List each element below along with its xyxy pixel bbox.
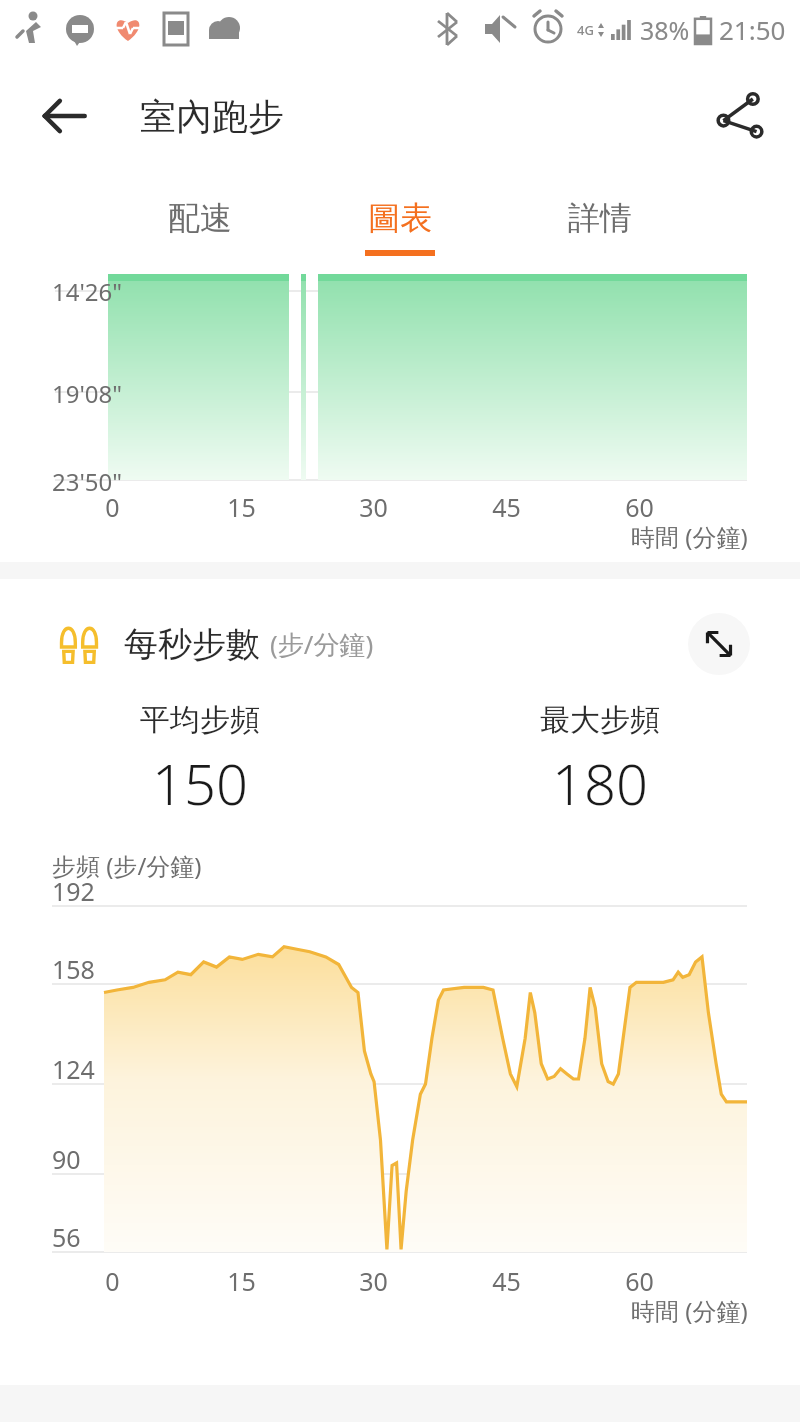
staticText: 步頻 (步/分鐘) <box>52 849 202 882</box>
button[interactable]: 圖表 <box>300 174 500 274</box>
staticText: 時間 (分鐘) <box>631 520 748 553</box>
button[interactable]: 配速 <box>100 174 300 274</box>
staticText: 每秒步數 <box>124 623 260 666</box>
staticText: 90 <box>52 1142 81 1176</box>
staticText: 158 <box>52 952 95 986</box>
staticText: (步/分鐘) <box>270 626 374 662</box>
button[interactable]: Expand chart <box>688 613 750 675</box>
staticText: 38% <box>640 13 690 47</box>
staticText: 23'50" <box>52 465 123 498</box>
staticText: 21:50 <box>719 12 786 47</box>
staticText: 4G <box>577 21 594 39</box>
staticText: 15 <box>227 490 256 524</box>
staticText: 45 <box>492 1264 521 1298</box>
button[interactable]: Share <box>710 86 770 146</box>
staticText: 0 <box>105 490 120 524</box>
staticText: 180 <box>552 745 648 821</box>
staticText: 15 <box>227 1264 256 1298</box>
staticText: 室內跑步 <box>140 94 284 139</box>
staticText: 時間 (分鐘) <box>631 1294 748 1327</box>
staticText: 60 <box>625 490 654 524</box>
staticText: 詳情 <box>568 198 632 238</box>
staticText: 30 <box>359 490 388 524</box>
staticText: 56 <box>52 1220 81 1254</box>
staticText: 平均步頻 <box>140 701 260 739</box>
staticText: 最大步頻 <box>540 701 660 739</box>
staticText: 配速 <box>168 198 232 238</box>
staticText: 192 <box>52 874 95 908</box>
staticText: 60 <box>625 1264 654 1298</box>
staticText: 30 <box>359 1264 388 1298</box>
button[interactable]: 詳情 <box>500 174 700 274</box>
staticText: 0 <box>105 1264 120 1298</box>
staticText: 45 <box>492 490 521 524</box>
staticText: 14'26" <box>52 275 123 308</box>
staticText: 150 <box>152 745 248 821</box>
staticText: 19'08" <box>52 377 123 410</box>
staticText: 124 <box>52 1052 95 1086</box>
button[interactable]: Back <box>36 88 92 144</box>
staticText: 圖表 <box>368 198 432 238</box>
